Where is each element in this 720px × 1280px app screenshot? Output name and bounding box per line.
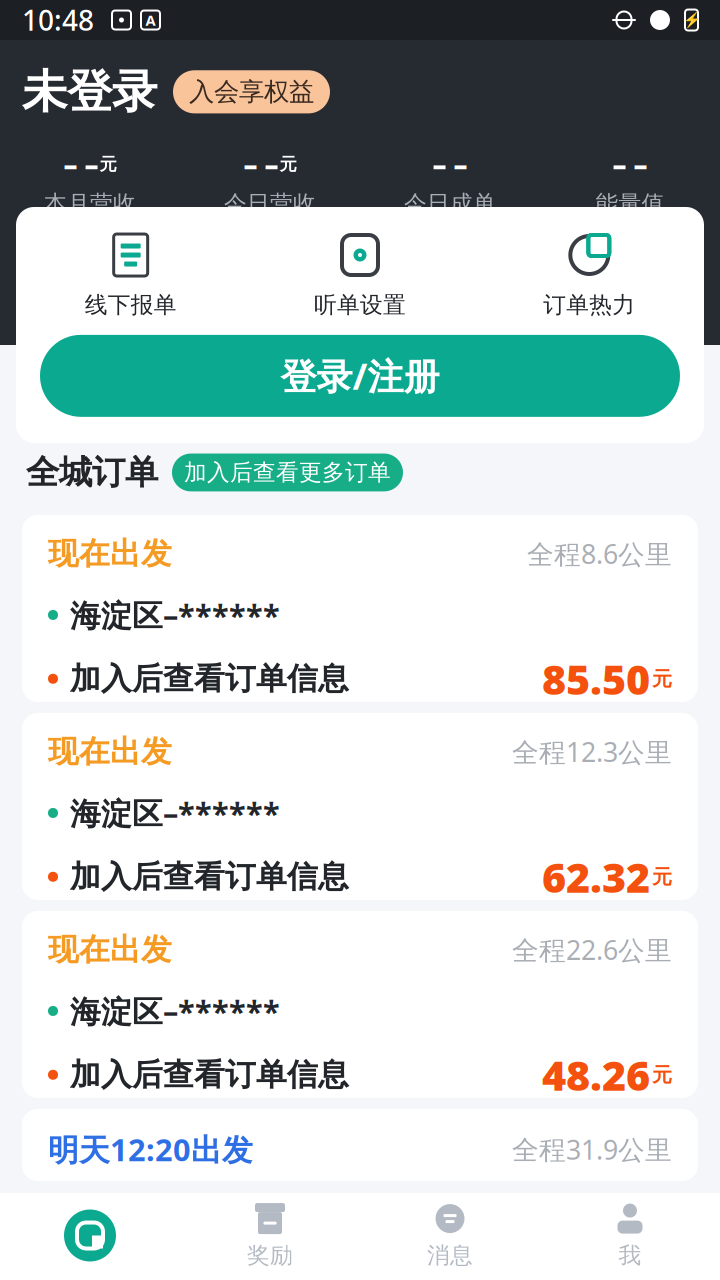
staticText: – – xyxy=(243,146,278,183)
staticText: 全程22.6公里 xyxy=(512,932,672,967)
staticText: 元 xyxy=(652,666,672,691)
staticText: 加入后查看订单信息 xyxy=(70,660,349,698)
staticText: 海淀区–****** xyxy=(70,793,280,833)
button[interactable]: 入会享权益 xyxy=(173,70,330,113)
staticText: 登录/注册 xyxy=(280,352,439,400)
staticText: – – xyxy=(612,146,647,183)
staticText: 全城订单 xyxy=(26,452,158,493)
button[interactable]: 首页 xyxy=(0,1210,180,1262)
staticText: 加入后查看订单信息 xyxy=(70,1056,349,1094)
button[interactable]: 加入后查看更多订单 xyxy=(172,454,403,491)
staticText: 现在出发 xyxy=(48,931,172,969)
staticText: 全程12.3公里 xyxy=(512,734,672,769)
staticText: 元 xyxy=(652,864,672,889)
staticText: 48.26 xyxy=(542,1047,650,1102)
staticText: 62.32 xyxy=(542,849,650,904)
staticText: 全程8.6公里 xyxy=(527,536,672,571)
staticText: 现在出发 xyxy=(48,733,172,771)
staticText: 海淀区–****** xyxy=(70,991,280,1031)
button[interactable]: 订单热力 xyxy=(475,229,704,323)
staticText: 海淀区–****** xyxy=(70,595,280,635)
staticText: 加入后查看订单信息 xyxy=(70,858,349,896)
button[interactable]: 听单设置 xyxy=(245,229,475,323)
staticText: 听单设置 xyxy=(314,291,406,319)
staticText: 现在出发 xyxy=(48,535,172,573)
button[interactable]: 现在出发 xyxy=(22,911,698,1098)
staticText: 明天12:20出发 xyxy=(48,1129,253,1170)
staticText: 85.50 xyxy=(542,651,650,706)
staticText: 元 xyxy=(652,1062,672,1087)
staticText: – – xyxy=(432,146,467,183)
button[interactable]: 明天12:20出发 xyxy=(22,1109,698,1181)
staticText: 今日成单 xyxy=(404,190,496,218)
staticText: 线下报单 xyxy=(85,291,177,319)
button[interactable]: 登录/注册 xyxy=(40,335,680,417)
staticText: 元 xyxy=(279,154,296,175)
staticText: 入会享权益 xyxy=(189,76,314,107)
button[interactable]: 现在出发 xyxy=(22,713,698,900)
staticText: ⚡ xyxy=(682,12,700,28)
staticText: 10:48 xyxy=(22,1,94,39)
button[interactable]: 线下报单 xyxy=(16,229,245,323)
staticText: 未登录 xyxy=(22,64,157,120)
button[interactable]: 奖励 xyxy=(180,1194,360,1279)
staticText: – – xyxy=(63,146,98,183)
staticText: 加入后查看更多订单 xyxy=(184,459,391,486)
staticText: 本月营收 xyxy=(44,190,136,218)
staticText: 今日营收 xyxy=(224,190,316,218)
staticText: 全程31.9公里 xyxy=(512,1132,672,1167)
staticText: 奖励 xyxy=(247,1242,293,1269)
staticText: 我 xyxy=(618,1242,641,1269)
button[interactable]: 消息 xyxy=(360,1194,540,1279)
staticText: A xyxy=(145,10,155,30)
staticText: 能量值 xyxy=(595,190,664,218)
staticText: 元 xyxy=(99,154,116,175)
button[interactable]: 现在出发 xyxy=(22,515,698,702)
button[interactable]: 我 xyxy=(540,1194,720,1279)
staticText: 订单热力 xyxy=(543,291,635,319)
staticText: 消息 xyxy=(427,1242,473,1269)
